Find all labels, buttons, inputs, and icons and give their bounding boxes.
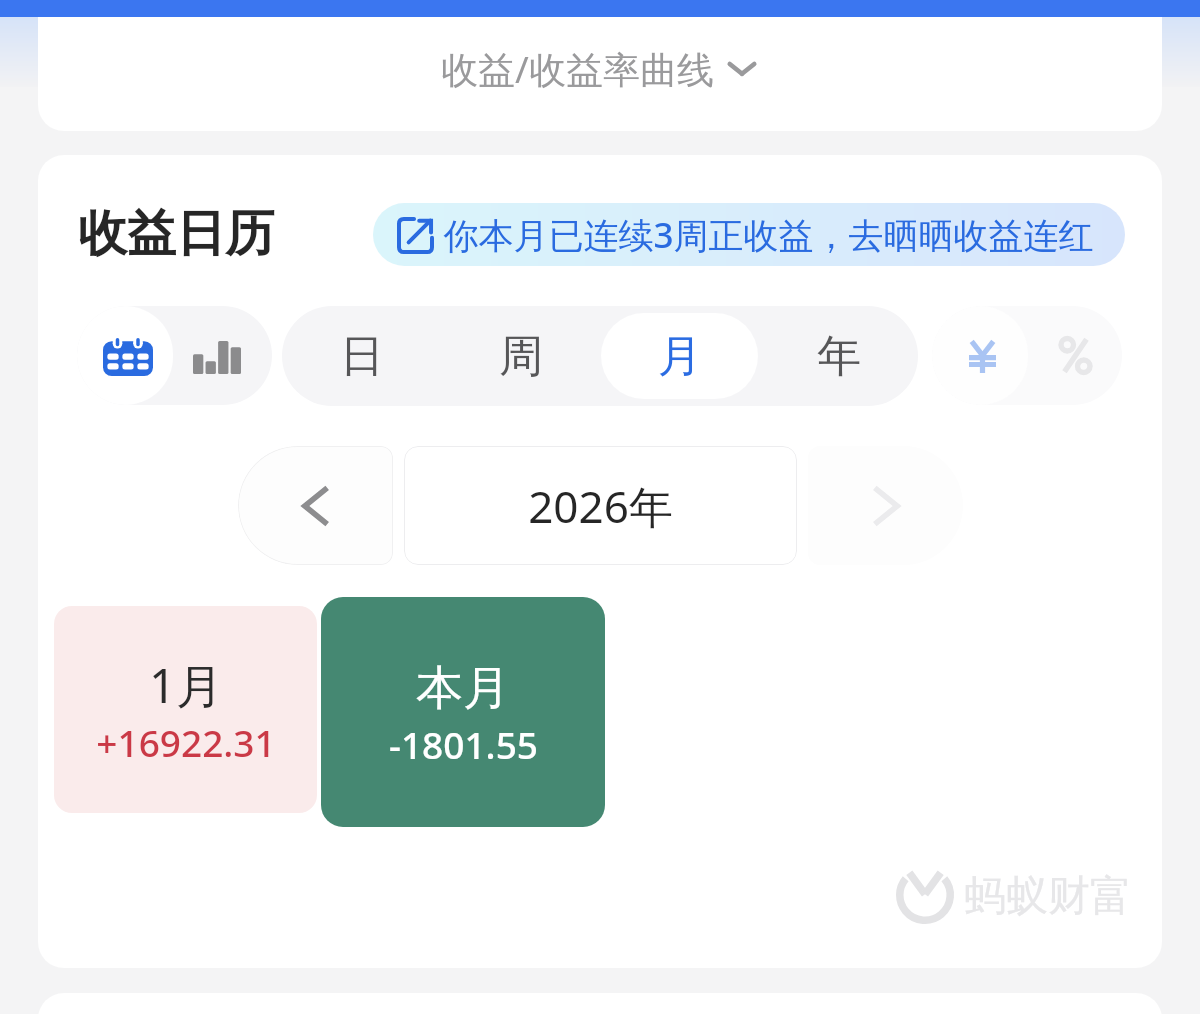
button[interactable]: 周 <box>442 313 599 399</box>
staticText: 1月 <box>149 653 223 717</box>
staticText: 你本月已连续3周正收益，去晒晒收益连红 <box>443 211 1094 259</box>
button[interactable]: 年 <box>760 313 917 399</box>
staticText: 收益日历 <box>78 203 274 265</box>
button[interactable]: 日 <box>283 313 440 399</box>
button[interactable]: 本月 <box>321 597 605 827</box>
button[interactable]: Chart view <box>173 306 272 405</box>
button[interactable]: 收益/收益率曲线 <box>38 17 1162 131</box>
button[interactable]: 1月 <box>54 606 317 813</box>
staticText: 2026年 <box>528 476 673 536</box>
staticText: 月 <box>658 329 702 384</box>
button[interactable]: Previous year <box>238 446 393 565</box>
button[interactable] <box>932 306 1028 405</box>
button[interactable] <box>1028 306 1122 405</box>
button[interactable]: 2026年 <box>404 446 797 565</box>
staticText: 日 <box>340 329 384 384</box>
button[interactable]: Calendar view <box>77 306 173 405</box>
button[interactable]: 你本月已连续3周正收益，去晒晒收益连红 <box>373 203 1125 266</box>
staticText: -1801.55 <box>389 719 538 769</box>
button[interactable]: 月 <box>601 313 758 399</box>
staticText: 周 <box>499 329 543 384</box>
staticText: +16922.31 <box>96 717 276 767</box>
staticText: 本月 <box>416 659 510 718</box>
staticText: 蚂蚁财富 <box>964 870 1132 923</box>
staticText: 收益/收益率曲线 <box>441 43 714 94</box>
staticText: 年 <box>817 329 861 384</box>
